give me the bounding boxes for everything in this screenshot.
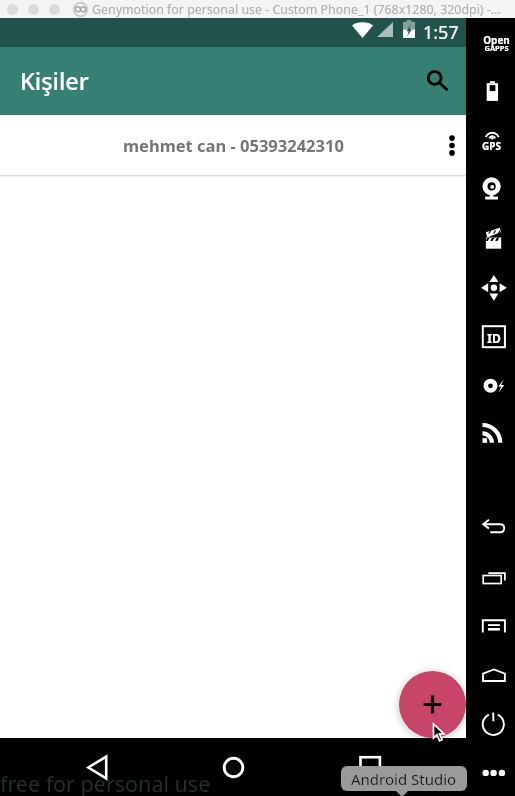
- button[interactable]: Network: [481, 422, 503, 445]
- button[interactable]: Back: [87, 755, 108, 780]
- button[interactable]: Recent apps: [481, 569, 507, 587]
- button[interactable]: Search: [413, 59, 457, 103]
- staticText: free for personal use: [0, 769, 211, 796]
- staticText: mehmet can - 05393242310: [123, 134, 344, 156]
- staticText: 1:57: [423, 20, 459, 45]
- button[interactable]: Back: [481, 518, 507, 538]
- button[interactable]: Device ID: [481, 325, 506, 349]
- button[interactable]: Recents: [358, 755, 383, 780]
- button[interactable]: Home: [221, 755, 246, 780]
- button[interactable]: GPS: [482, 128, 502, 142]
- staticText: Kişiler: [20, 65, 89, 97]
- button[interactable]: Battery: [484, 79, 500, 103]
- button[interactable]: Home: [481, 667, 507, 684]
- button[interactable]: D-pad: [482, 276, 506, 300]
- staticText: Open: [483, 33, 510, 47]
- button[interactable]: Power: [481, 711, 506, 738]
- button[interactable]: Camera: [481, 177, 503, 202]
- button[interactable]: Flash: [482, 376, 505, 395]
- staticText: Android Studio: [351, 769, 457, 789]
- staticText: ID: [487, 330, 501, 346]
- button[interactable]: Add contact: [399, 671, 466, 738]
- staticText: GPS: [482, 139, 501, 153]
- button[interactable]: mehmet can - 05393242310: [0, 115, 466, 175]
- button[interactable]: More options: [432, 125, 472, 165]
- button[interactable]: More: [481, 766, 506, 780]
- button[interactable]: Record: [484, 226, 504, 251]
- button[interactable]: Menu: [481, 618, 507, 636]
- staticText: Genymotion for personal use - Custom Pho…: [92, 1, 501, 18]
- staticText: GAPPS: [484, 43, 509, 53]
